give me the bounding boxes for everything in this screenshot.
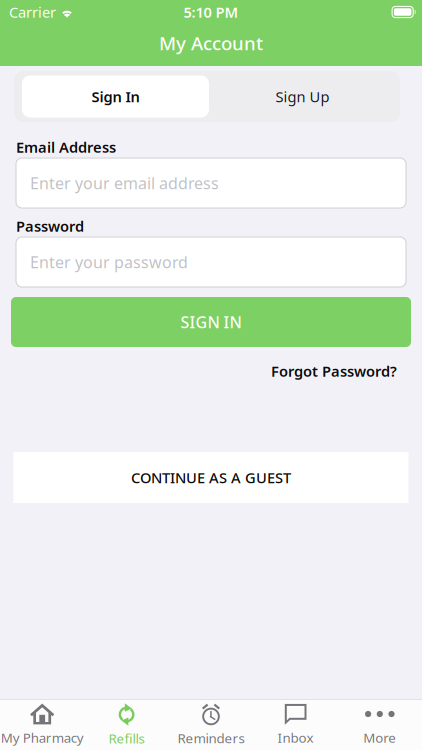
staticText: CONTINUE AS A GUEST [131,468,291,487]
button[interactable]: Reminders [169,699,253,750]
staticText: My Account [159,31,263,55]
staticText: Sign In [91,87,139,106]
button[interactable]: Sign Up [209,75,396,117]
staticText: 5:10 PM [183,2,238,22]
staticText: Email Address [16,137,116,157]
staticText: My Pharmacy [1,729,84,746]
staticText: Inbox [277,729,313,746]
button[interactable]: More [338,699,422,750]
staticText: Password [16,216,84,236]
staticText: Refills [109,729,145,747]
button[interactable]: SIGN IN [11,297,411,347]
staticText: Carrier [9,2,56,22]
staticText: Sign Up [275,87,329,106]
button[interactable]: CONTINUE AS A GUEST [13,452,408,503]
button[interactable]: Inbox [253,699,338,750]
button[interactable]: My Pharmacy [0,699,84,750]
staticText: Enter your email address [30,172,219,194]
staticText: Reminders [177,729,244,747]
button[interactable]: Sign In [22,75,209,117]
staticText: Forgot Password? [271,361,397,381]
staticText: More [363,729,396,746]
staticText: Enter your password [30,251,188,273]
button[interactable]: Forgot Password? [271,361,397,381]
staticText: SIGN IN [180,311,241,333]
button[interactable]: Refills [84,699,169,750]
